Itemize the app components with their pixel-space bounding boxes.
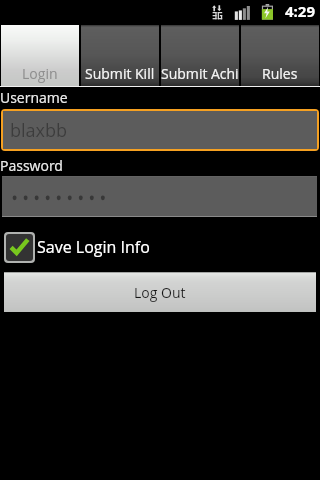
staticText: Submit Achievement [161, 64, 239, 83]
other: 3G data [211, 3, 224, 21]
button[interactable]: Save Login Info [4, 232, 150, 263]
staticText: Password [0, 156, 63, 175]
staticText: 4:29 [285, 1, 315, 21]
button[interactable]: Submit Achievement [161, 25, 239, 86]
staticText: Login [22, 64, 58, 83]
staticText: blaxbb [10, 118, 68, 143]
button[interactable]: Rules [241, 25, 319, 86]
staticText: Log Out [134, 283, 186, 302]
staticText: Rules [262, 64, 298, 83]
button[interactable]: Log Out [4, 272, 316, 312]
staticText: Username [0, 88, 68, 107]
staticText: Save Login Info [37, 236, 150, 258]
button[interactable] [2, 176, 317, 217]
staticText: Submit Kill [85, 64, 155, 83]
button[interactable]: blaxbb [3, 111, 317, 149]
button[interactable]: Submit Kill [81, 25, 159, 86]
button[interactable]: Login [1, 25, 79, 86]
